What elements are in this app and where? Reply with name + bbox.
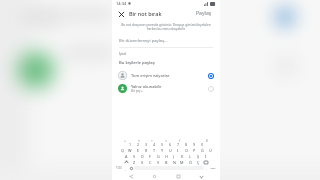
button[interactable]: Shift (123, 159, 130, 165)
staticText: . (206, 166, 207, 171)
button[interactable]: Emoji (128, 165, 134, 171)
staticText: Bir not bırak (129, 10, 162, 17)
button[interactable]: Ğ (198, 147, 206, 153)
button[interactable]: 4 (150, 142, 158, 147)
button[interactable]: X (138, 159, 146, 165)
staticText: N (173, 160, 176, 165)
button[interactable]: C (146, 159, 154, 165)
button[interactable]: . (204, 165, 209, 171)
button[interactable]: × (135, 137, 143, 142)
button[interactable]: Paylaş (193, 8, 215, 19)
staticText: 9 (193, 142, 196, 147)
button[interactable]: Ü (206, 147, 214, 153)
button[interactable]: 1 (126, 142, 134, 147)
button[interactable]: Bir düzenlemeyi paylaş... (119, 36, 213, 45)
staticText: P (193, 148, 196, 153)
button[interactable]: M (178, 159, 186, 165)
button[interactable]: = (162, 137, 170, 142)
button[interactable]: İ (202, 153, 210, 159)
button[interactable]: Geri (127, 172, 135, 180)
staticText: X (141, 160, 144, 165)
button[interactable]: U (166, 147, 174, 153)
button[interactable]: Enter (209, 165, 217, 171)
button[interactable]: Ş (194, 153, 202, 159)
staticText: $ (206, 138, 208, 142)
staticText: Z (133, 160, 136, 165)
button[interactable]: 3 (142, 142, 150, 147)
button[interactable]: L (186, 153, 194, 159)
button[interactable]: O (182, 147, 190, 153)
staticText: = (165, 138, 167, 142)
staticText: × (138, 138, 140, 142)
button[interactable]: Q (118, 147, 126, 153)
button[interactable]: Klavye gizle (197, 172, 205, 180)
button[interactable]: , (123, 165, 128, 171)
button[interactable]: Tüm erişim istiyorlar (112, 69, 220, 82)
button[interactable]: S (130, 153, 138, 159)
button[interactable]: 0 (198, 142, 206, 147)
staticText: 4 (153, 142, 156, 147)
button[interactable]: E (134, 147, 142, 153)
button[interactable]: Geri sil (202, 159, 209, 165)
button[interactable]: V (154, 159, 162, 165)
staticText: Bir şey + (131, 89, 143, 93)
button[interactable]: R (142, 147, 150, 153)
button[interactable]: W (126, 147, 134, 153)
button[interactable]: A (122, 153, 130, 159)
staticText: Tüm erişim istiyorlar (131, 73, 170, 78)
staticText: Bu kişilerle paylaş (119, 60, 155, 66)
button[interactable]: Yalnız okunabilir (112, 82, 220, 95)
button[interactable]: Ana ekran (150, 172, 158, 180)
button[interactable]: K (178, 153, 186, 159)
staticText: V (157, 160, 160, 165)
button[interactable]: $ (203, 137, 211, 142)
staticText: S (133, 154, 136, 159)
staticText: herkes bu notu okuyabilir. (119, 27, 213, 31)
button[interactable]: T (150, 147, 158, 153)
staticText: ?123 (116, 166, 122, 170)
button[interactable]: Ö (186, 159, 194, 165)
button[interactable]: 2 (134, 142, 142, 147)
button[interactable]: ?123 (115, 165, 123, 171)
button[interactable]: / (176, 137, 184, 142)
button[interactable]: P (190, 147, 198, 153)
button[interactable]: 5 (158, 142, 166, 147)
staticText: Bir düzenlemeyi paylaş... (119, 38, 168, 44)
staticText: W (128, 148, 132, 153)
button[interactable]: J (170, 153, 178, 159)
staticText: H (165, 154, 168, 159)
staticText: E (137, 148, 140, 153)
button[interactable]: 7 (174, 142, 182, 147)
button[interactable]: H (162, 153, 170, 159)
staticText: B (165, 160, 168, 165)
button[interactable]: ÷ (148, 137, 156, 142)
staticText: Ç (197, 160, 200, 165)
staticText: Paylaş (196, 10, 212, 17)
button[interactable]: N (170, 159, 178, 165)
staticText: Yalnız okunabilir (131, 84, 162, 89)
button[interactable]: Y (158, 147, 166, 153)
button[interactable]: F (146, 153, 154, 159)
button[interactable]: G (154, 153, 162, 159)
staticText: 2 (137, 142, 140, 147)
staticText: Q (121, 148, 124, 153)
button[interactable]: Ç (194, 159, 202, 165)
button[interactable]: + (121, 137, 129, 142)
button[interactable]: Kapat (117, 10, 125, 18)
button[interactable]: B (162, 159, 170, 165)
staticText: 3 (145, 142, 148, 147)
button[interactable]: 9 (190, 142, 198, 147)
button[interactable]: D (138, 153, 146, 159)
button[interactable]: I (174, 147, 182, 153)
button[interactable]: 8 (182, 142, 190, 147)
staticText: Bu not dosyanın yanında görünür. Dosyayı… (119, 23, 213, 27)
button[interactable]: Z (130, 159, 138, 165)
staticText: C (149, 160, 152, 165)
staticText: 5 (161, 142, 164, 147)
staticText: 0 (201, 142, 204, 147)
staticText: M (180, 160, 184, 165)
button[interactable]: Son uygulamalar (174, 172, 182, 180)
button[interactable]: 6 (166, 142, 174, 147)
